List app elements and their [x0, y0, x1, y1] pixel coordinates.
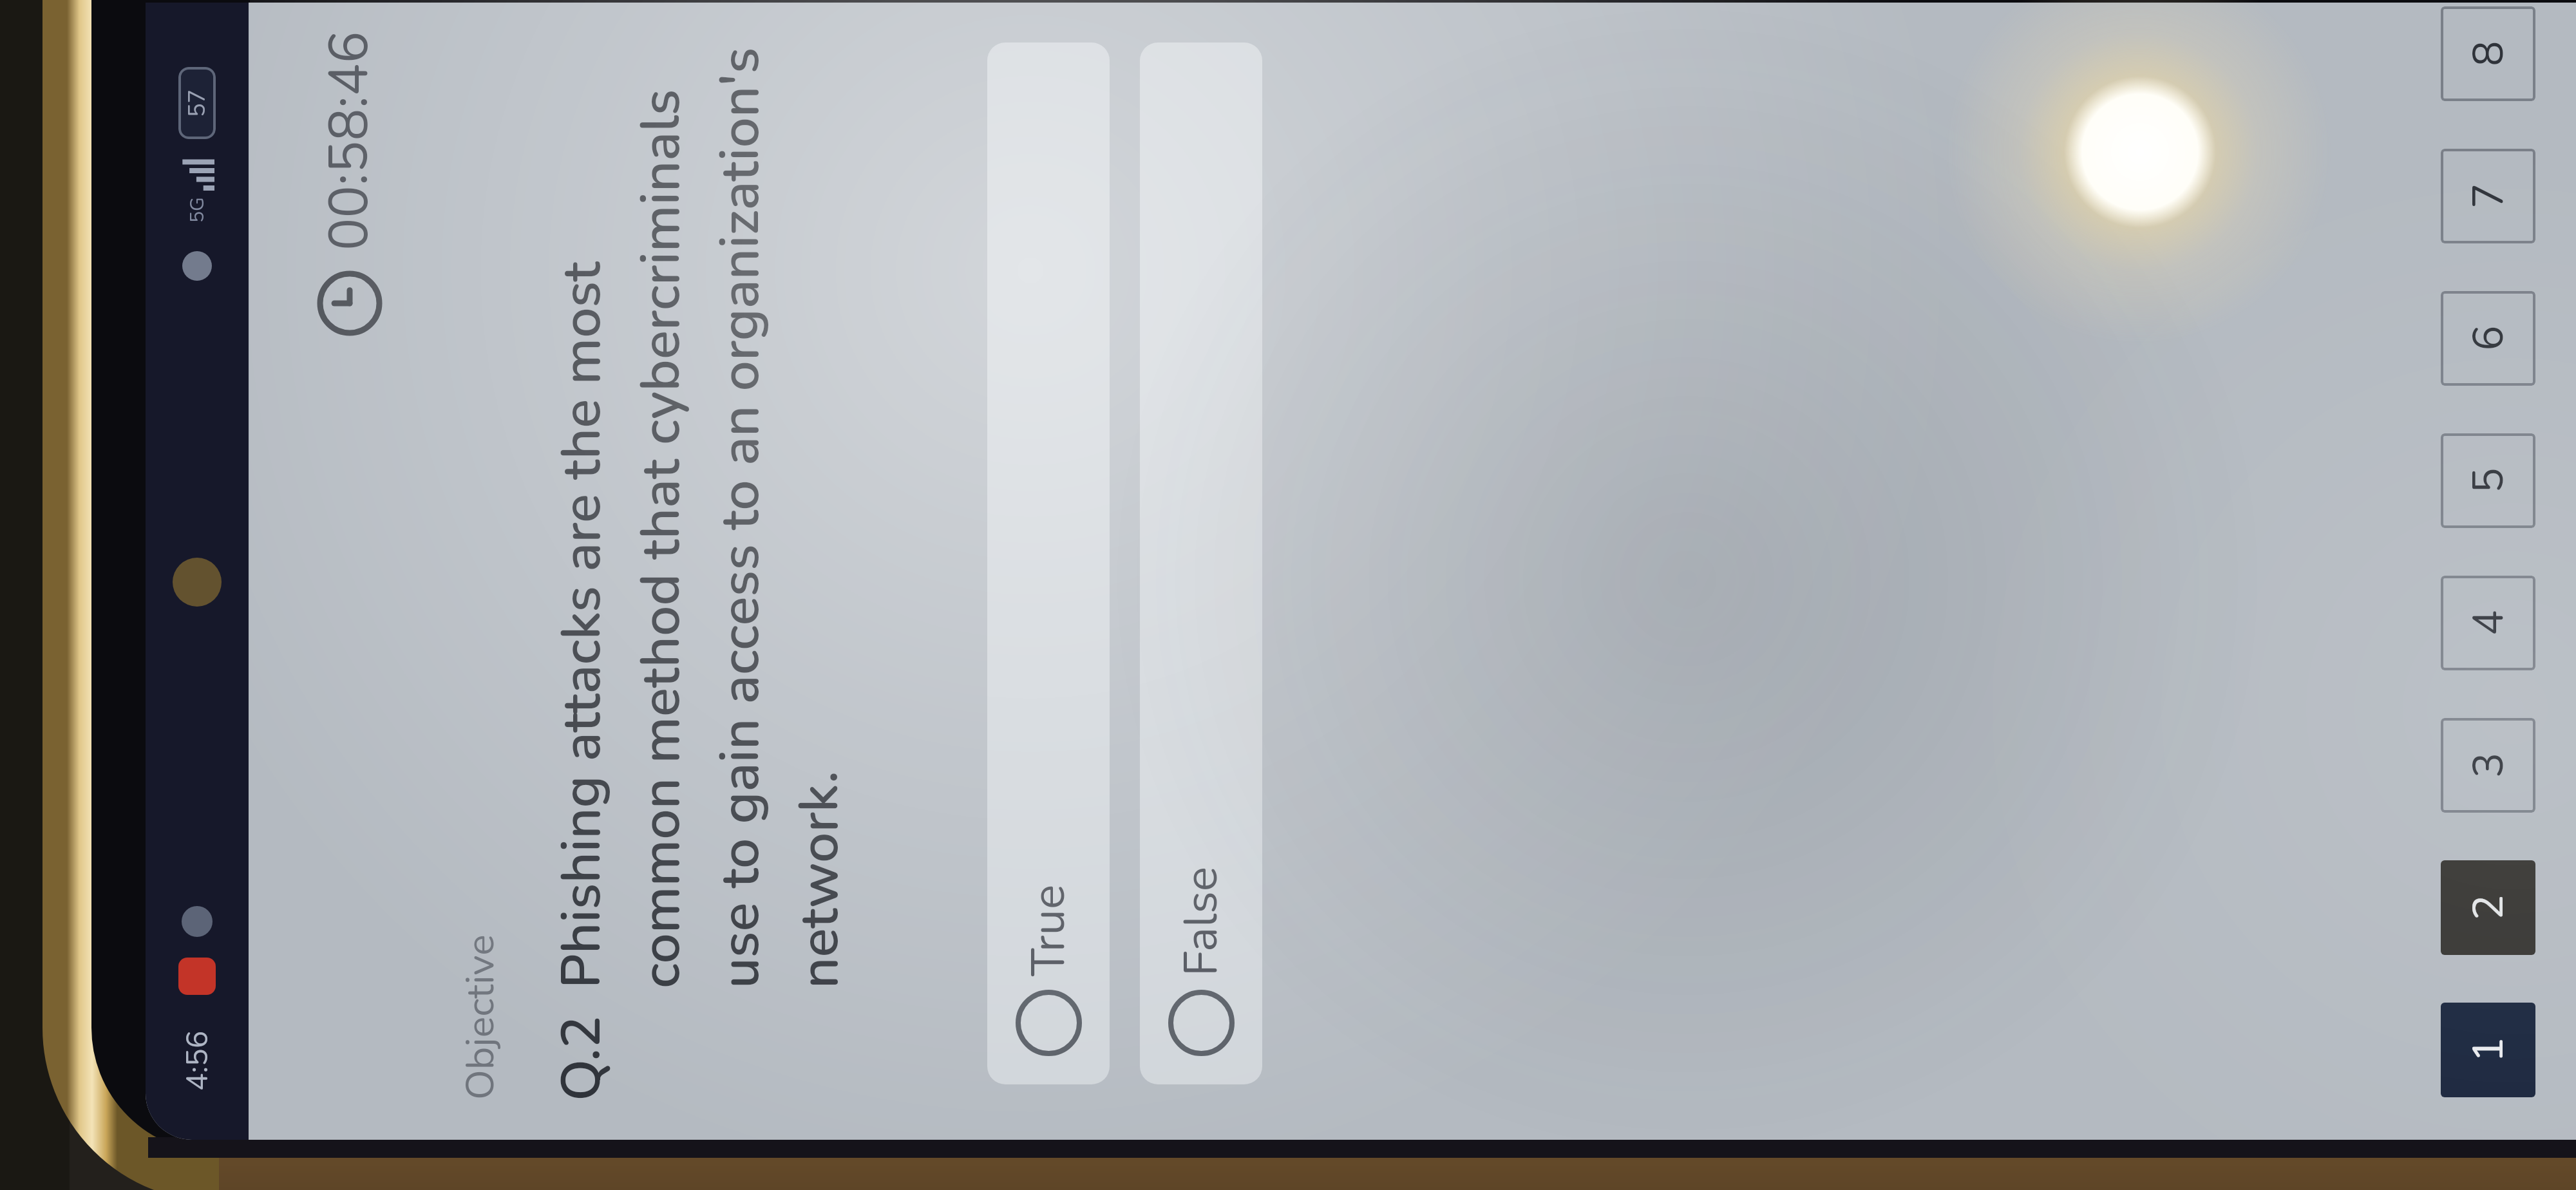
staticText: 5	[2459, 467, 2517, 493]
button[interactable]: False	[1140, 42, 1262, 1084]
staticText: Phishing attacks are the most common met…	[545, 43, 857, 988]
button[interactable]: True	[987, 42, 1110, 1084]
staticText: 2	[2459, 894, 2517, 920]
staticText: 6	[2459, 325, 2517, 351]
staticText: 8	[2459, 41, 2517, 66]
button[interactable]: 1	[2441, 1003, 2535, 1097]
staticText: 4:56	[177, 1030, 218, 1091]
staticText: False	[1170, 866, 1233, 976]
staticText: 5G	[184, 197, 211, 223]
button[interactable]: 7	[2441, 149, 2535, 243]
button[interactable]: 4	[2441, 576, 2535, 670]
staticText: 4	[2459, 610, 2517, 636]
button[interactable]: 6	[2441, 291, 2535, 386]
other: Remaining time	[316, 270, 383, 337]
staticText: Q.2	[545, 1015, 619, 1101]
button[interactable]: 2	[2441, 860, 2535, 955]
staticText: 57	[182, 89, 213, 117]
staticText: True	[1017, 884, 1080, 976]
staticText: Objective	[453, 934, 507, 1100]
button[interactable]: 8	[2441, 6, 2535, 101]
staticText: 00:58:46	[312, 31, 386, 250]
staticText: 3	[2459, 752, 2517, 778]
button[interactable]: 3	[2441, 718, 2535, 813]
button[interactable]: 5	[2441, 433, 2535, 528]
staticText: 7	[2459, 183, 2517, 209]
staticText: 1	[2459, 1037, 2517, 1062]
